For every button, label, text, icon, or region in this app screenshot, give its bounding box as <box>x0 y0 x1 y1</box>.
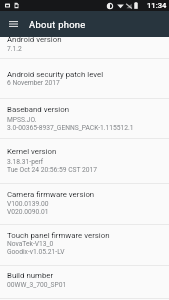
button[interactable]: Camera firmware version <box>0 184 169 225</box>
button[interactable]: Android security patch level <box>0 59 169 99</box>
button[interactable]: Open navigation drawer <box>0 11 26 37</box>
button[interactable]: Android version <box>0 37 169 59</box>
button[interactable]: Baseband version <box>0 99 169 139</box>
staticText: Touch panel firmware version <box>7 231 169 240</box>
staticText: 11:34 <box>147 1 167 10</box>
staticText: 7.1.2 <box>7 45 169 53</box>
staticText: Tue Oct 24 20:56:59 CST 2017 <box>7 166 169 174</box>
staticText: MPSS.JO. <box>7 116 169 124</box>
staticText: 00WW_3_700_SP01 <box>7 281 169 289</box>
staticText: Android version <box>7 35 169 44</box>
button[interactable]: Touch panel firmware version <box>0 225 169 266</box>
staticText: 3.18.31-perf <box>7 158 169 166</box>
staticText: 3.0-00365-8937_GENNS_PACK-1.115512.1 <box>7 124 169 132</box>
button[interactable]: Kernel version <box>0 139 169 184</box>
staticText: Baseband version <box>7 105 169 114</box>
staticText: Build number <box>7 271 169 280</box>
staticText: Goodix-v1.05.21-LV <box>7 248 169 256</box>
staticText: Camera firmware version <box>7 190 169 199</box>
staticText: NovaTek-V13_0 <box>7 240 169 248</box>
staticText: V020.0090.01 <box>7 208 169 216</box>
staticText: V100.0139.00 <box>7 200 169 208</box>
staticText: About phone <box>29 19 86 30</box>
staticText: Android security patch level <box>7 70 169 79</box>
staticText: Kernel version <box>7 147 169 156</box>
button[interactable]: Build number <box>0 266 169 299</box>
staticText: 6 November 2017 <box>7 79 169 87</box>
